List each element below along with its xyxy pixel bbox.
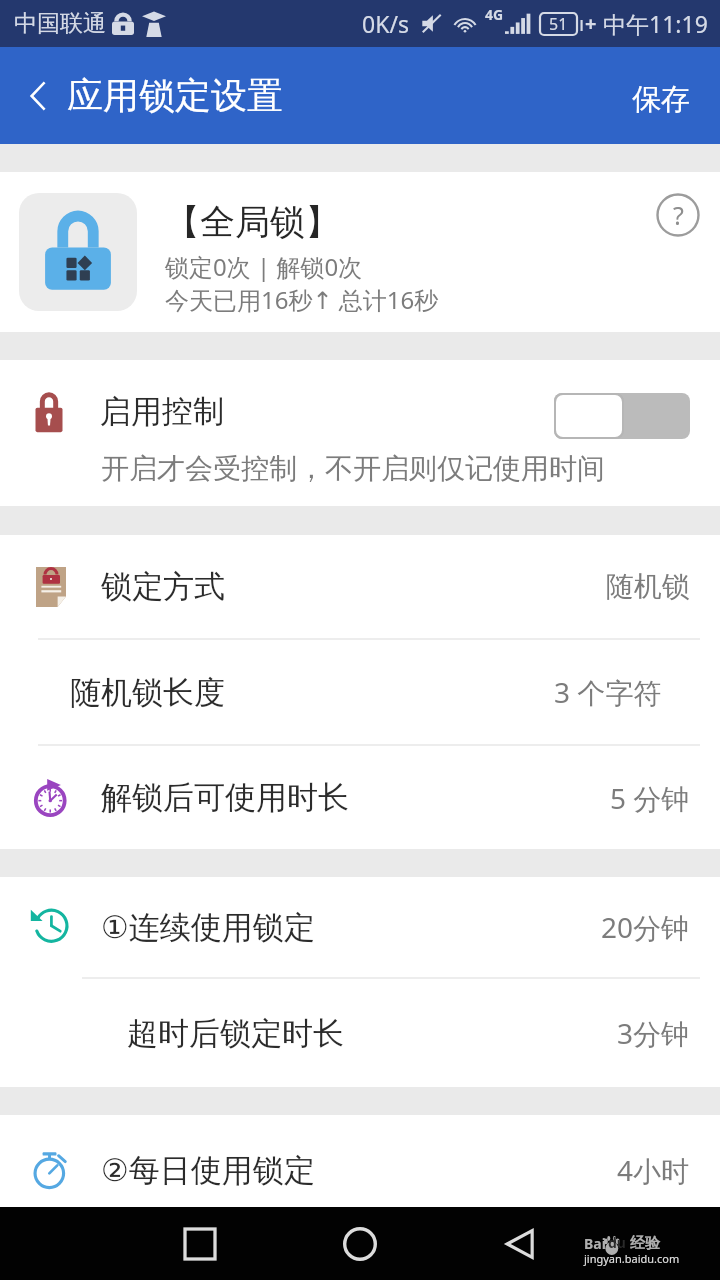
staticText: 5 分钟 bbox=[610, 779, 690, 817]
button[interactable]: 启用控制 bbox=[0, 360, 720, 506]
staticText: 启用控制 bbox=[100, 392, 224, 431]
staticText: 中午11:19 bbox=[603, 8, 708, 39]
staticText: ①连续使用锁定 bbox=[101, 908, 315, 947]
staticText: ②每日使用锁定 bbox=[101, 1151, 315, 1190]
staticText: 中国联通 bbox=[14, 9, 106, 38]
button[interactable]: Home bbox=[328, 1212, 392, 1276]
staticText: 随机锁长度 bbox=[70, 673, 225, 712]
staticText: 20分钟 bbox=[601, 908, 690, 946]
staticText: 4G bbox=[485, 5, 504, 24]
staticText: 超时后锁定时长 bbox=[127, 1014, 344, 1053]
staticText: 经验 bbox=[630, 1234, 660, 1253]
staticText: ? bbox=[673, 198, 684, 232]
button[interactable]: 【全局锁】 bbox=[0, 172, 720, 332]
staticText: 0K/s bbox=[362, 8, 409, 39]
staticText: 今天已用16秒↑ 总计16秒 bbox=[165, 283, 439, 316]
staticText: 解锁后可使用时长 bbox=[101, 778, 349, 817]
staticText: jingyan.baidu.com bbox=[584, 1251, 680, 1266]
staticText: 51 bbox=[549, 13, 568, 35]
button[interactable]: 锁定方式 bbox=[0, 535, 720, 638]
staticText: 开启才会受控制，不开启则仅记使用时间 bbox=[101, 451, 605, 486]
button[interactable]: Back bbox=[10, 68, 66, 124]
staticText: 3 个字符 bbox=[554, 673, 662, 711]
button[interactable]: Back bbox=[488, 1212, 552, 1276]
staticText: + bbox=[585, 10, 597, 37]
staticText: 锁定方式 bbox=[101, 567, 225, 606]
staticText: 随机锁 bbox=[606, 569, 690, 604]
staticText: 3分钟 bbox=[617, 1014, 690, 1052]
button[interactable]: Help bbox=[650, 187, 706, 243]
staticText: Bai bbox=[584, 1234, 606, 1253]
staticText: 应用锁定设置 bbox=[67, 73, 283, 118]
button[interactable]: ②每日使用锁定 bbox=[0, 1115, 720, 1207]
button[interactable]: Toggle enable control bbox=[554, 393, 690, 439]
button[interactable]: ①连续使用锁定 bbox=[0, 877, 720, 977]
button[interactable]: 超时后锁定时长 bbox=[0, 979, 720, 1087]
button[interactable]: 解锁后可使用时长 bbox=[0, 746, 720, 849]
staticText: 保存 bbox=[632, 81, 690, 118]
button[interactable]: 随机锁长度 bbox=[0, 640, 720, 744]
staticText: ı bbox=[579, 10, 585, 37]
staticText: 【全局锁】 bbox=[165, 200, 340, 244]
button[interactable]: 保存 bbox=[602, 51, 720, 140]
staticText: 4小时 bbox=[617, 1151, 690, 1189]
button[interactable]: Recents bbox=[168, 1212, 232, 1276]
staticText: 锁定0次 | 解锁0次 bbox=[165, 250, 363, 283]
staticText: du bbox=[608, 1233, 626, 1252]
